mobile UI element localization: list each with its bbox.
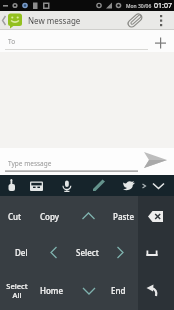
staticText: Del <box>15 247 28 258</box>
button[interactable] <box>124 11 148 30</box>
button[interactable] <box>1 11 25 30</box>
button[interactable] <box>0 175 29 196</box>
staticText: End <box>111 285 126 296</box>
button[interactable]: End <box>98 280 138 300</box>
button[interactable]: Copy <box>29 206 69 226</box>
staticText: Select <box>76 247 99 258</box>
button[interactable] <box>29 175 58 196</box>
button[interactable]: To <box>0 30 174 52</box>
button[interactable]: Select <box>67 242 107 262</box>
button[interactable]: Cut <box>0 206 35 226</box>
staticText: To <box>8 37 16 46</box>
button[interactable]: Del <box>1 242 41 262</box>
button[interactable] <box>155 11 167 30</box>
button[interactable]: Paste <box>103 206 143 226</box>
staticText: Type message <box>8 159 52 168</box>
staticText: 01:07 <box>154 1 172 11</box>
button[interactable]: Type message <box>8 159 52 168</box>
staticText: Cut <box>8 211 22 222</box>
button[interactable] <box>58 175 87 196</box>
staticText: Paste <box>113 211 134 222</box>
button[interactable] <box>87 175 116 196</box>
staticText: New message <box>28 15 81 26</box>
staticText: Copy <box>40 211 59 222</box>
button[interactable]: Select All <box>0 280 34 301</box>
button[interactable]: Home <box>32 280 72 300</box>
button[interactable] <box>145 175 174 196</box>
button[interactable] <box>116 175 145 196</box>
staticText: Mon 30/06 <box>126 3 152 10</box>
staticText: Home <box>40 285 64 296</box>
staticText: Select All <box>6 281 28 300</box>
